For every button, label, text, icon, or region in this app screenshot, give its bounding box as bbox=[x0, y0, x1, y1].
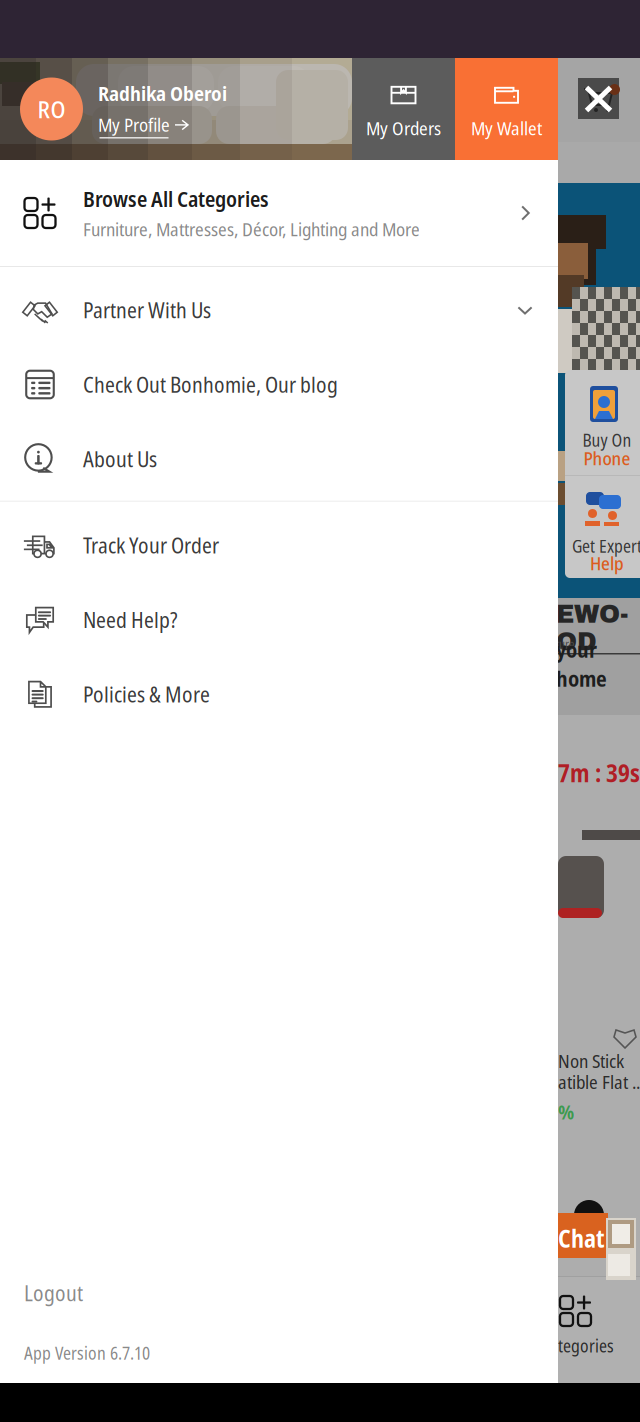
button[interactable]: Browse All Categories bbox=[0, 160, 558, 266]
staticText: About Us bbox=[83, 444, 157, 474]
staticText: Get Expert bbox=[572, 534, 640, 558]
button[interactable]: Track Your Order bbox=[0, 508, 558, 582]
staticText: Phone bbox=[583, 445, 630, 471]
button[interactable]: Logout bbox=[0, 1271, 558, 1315]
staticText: My Wallet bbox=[471, 115, 542, 141]
staticText: Buy On bbox=[582, 428, 631, 452]
staticText: Non Stick bbox=[558, 1048, 624, 1073]
staticText: RO bbox=[37, 93, 65, 125]
staticText: Partner With Us bbox=[83, 295, 211, 325]
staticText: Need Help? bbox=[83, 605, 178, 634]
staticText: Track Your Order bbox=[83, 531, 219, 560]
button[interactable]: Need Help? bbox=[0, 582, 558, 657]
button[interactable]: Check Out Bonhomie, Our blog bbox=[0, 347, 558, 422]
button[interactable]: My Wallet bbox=[455, 58, 558, 160]
staticText: 7m : 39s bbox=[558, 757, 640, 789]
staticText: Radhika Oberoi bbox=[98, 80, 227, 107]
staticText: your home bbox=[556, 635, 607, 693]
staticText: ture bbox=[556, 636, 575, 652]
staticText: Chat bbox=[558, 1222, 605, 1255]
staticText: Check Out Bonhomie, Our blog bbox=[83, 370, 338, 399]
button[interactable]: My Orders bbox=[352, 58, 455, 160]
staticText: atible Flat ... bbox=[558, 1069, 640, 1094]
button[interactable]: RO bbox=[0, 58, 352, 160]
button[interactable]: Close menu bbox=[578, 78, 619, 119]
staticText: Policies & More bbox=[83, 680, 210, 709]
staticText: My Profile bbox=[98, 112, 170, 137]
staticText: Browse All Categories bbox=[83, 184, 269, 213]
button[interactable]: Partner With Us bbox=[0, 273, 558, 347]
staticText: Help bbox=[590, 550, 624, 576]
staticText: tegories bbox=[558, 1334, 614, 1358]
button[interactable]: About Us bbox=[0, 422, 558, 496]
staticText: % bbox=[558, 1098, 574, 1125]
staticText: App Version 6.7.10 bbox=[24, 1341, 150, 1365]
button[interactable]: Policies & More bbox=[0, 657, 558, 731]
staticText: Furniture, Mattresses, Décor, Lighting a… bbox=[83, 216, 420, 242]
staticText: My Orders bbox=[366, 115, 441, 141]
staticText: Logout bbox=[24, 1278, 83, 1308]
staticText: EWOOD bbox=[556, 600, 635, 655]
